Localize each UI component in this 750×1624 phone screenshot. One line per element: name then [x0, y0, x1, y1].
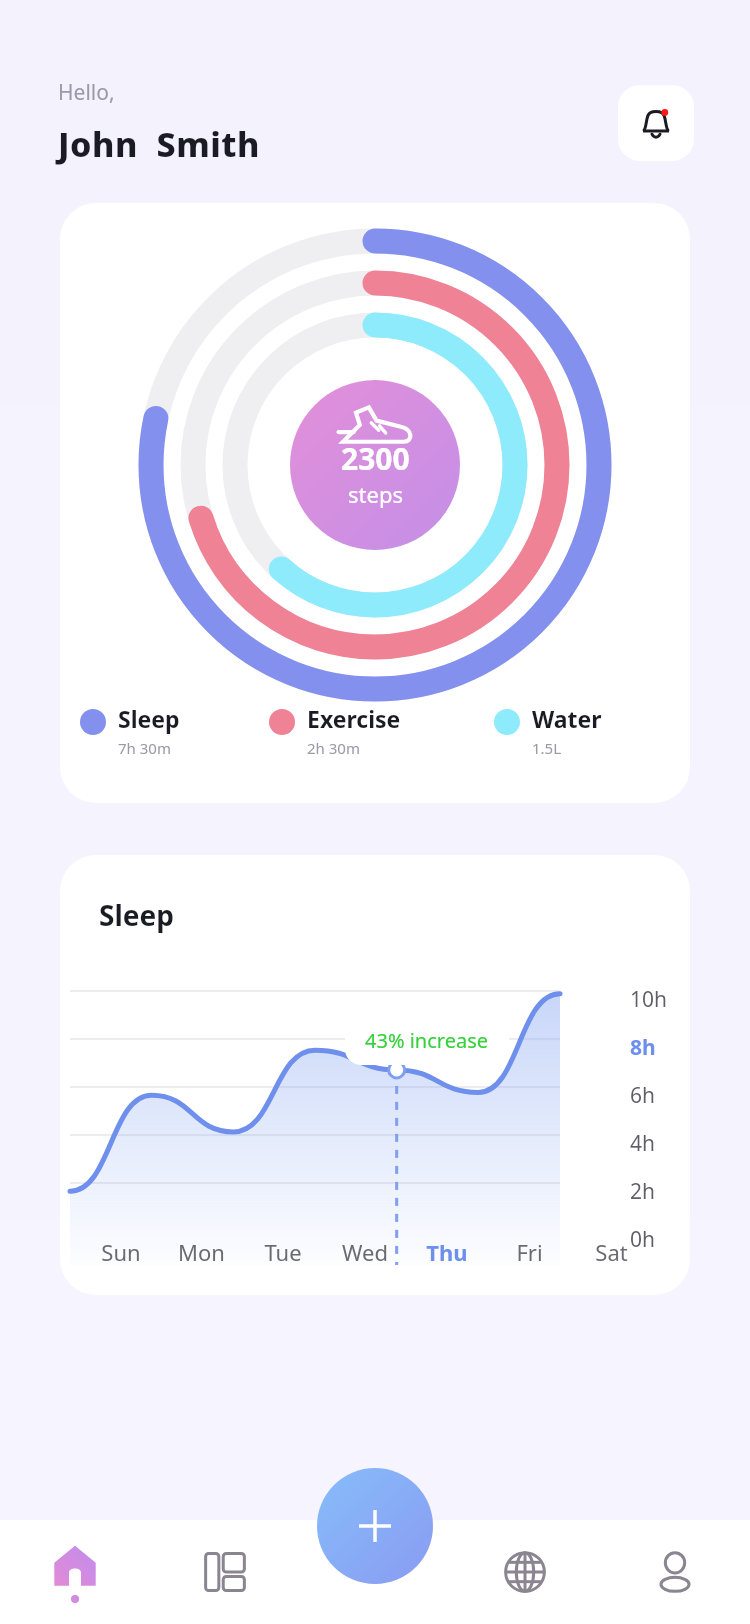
staticText: Exercise [307, 703, 401, 734]
staticText: 2h [630, 1177, 655, 1203]
staticText: Tue [264, 1237, 302, 1267]
staticText: Water [532, 703, 602, 734]
staticText: John Smith [58, 121, 260, 167]
button[interactable]: Dashboard [150, 1520, 300, 1624]
staticText: Thu [426, 1237, 468, 1267]
button[interactable]: Add [317, 1468, 433, 1584]
staticText: 4h [630, 1129, 655, 1155]
staticText: 6h [630, 1081, 655, 1107]
button[interactable]: Home [0, 1520, 150, 1624]
button[interactable]: Notifications [618, 85, 694, 161]
staticText: 2300 [341, 438, 410, 479]
staticText: 1.5L [532, 738, 562, 758]
button[interactable]: Explore [450, 1520, 600, 1624]
staticText: 7h 30m [118, 738, 171, 758]
button[interactable]: Profile [600, 1520, 750, 1624]
staticText: steps [348, 479, 403, 509]
button[interactable]: 2300 [60, 203, 690, 803]
staticText: Wed [342, 1237, 388, 1267]
staticText: Sleep [118, 703, 180, 734]
staticText: 8h [630, 1033, 656, 1059]
staticText: Mon [178, 1237, 225, 1267]
staticText: Sleep [99, 896, 174, 934]
staticText: Sun [101, 1237, 141, 1267]
staticText: Fri [516, 1237, 543, 1267]
staticText: 2h 30m [307, 738, 360, 758]
staticText: 10h [630, 985, 668, 1011]
staticText: 0h [630, 1225, 655, 1251]
staticText: Hello, [58, 78, 115, 107]
button[interactable]: Sleep [60, 855, 690, 1295]
staticText: 43% increase [365, 1027, 489, 1054]
staticText: Sat [595, 1237, 628, 1267]
